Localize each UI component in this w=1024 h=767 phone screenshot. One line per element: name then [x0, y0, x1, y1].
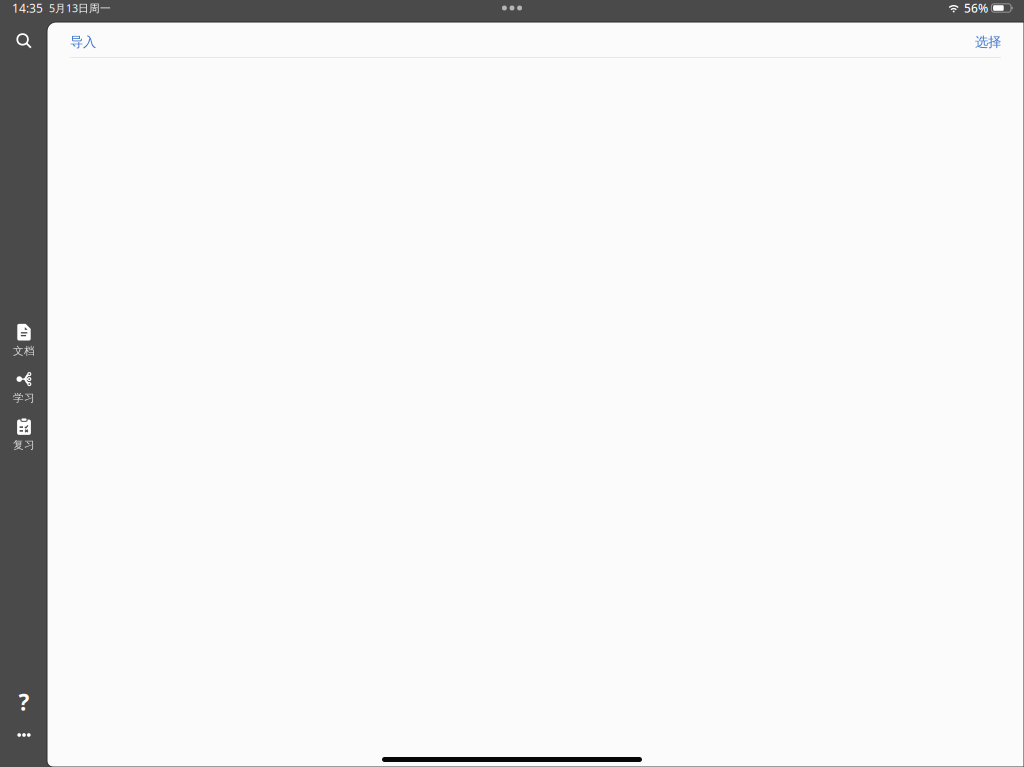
staticText: 文档 — [13, 344, 35, 357]
button[interactable]: Search — [0, 32, 48, 49]
button[interactable]: 选择 — [975, 22, 1001, 57]
staticText: 选择 — [975, 34, 1001, 50]
staticText: 14:35 — [12, 0, 43, 16]
staticText: ? — [18, 687, 29, 717]
button[interactable]: Help — [0, 692, 48, 712]
button[interactable]: 学习 — [0, 371, 48, 404]
button[interactable]: 导入 — [70, 22, 96, 57]
button[interactable]: 复习 — [0, 418, 48, 451]
staticText: 导入 — [70, 34, 96, 50]
staticText: 学习 — [13, 391, 35, 404]
button[interactable]: More — [0, 726, 48, 744]
button[interactable]: 文档 — [0, 324, 48, 357]
staticText: 复习 — [13, 438, 35, 451]
staticText: 56% — [964, 0, 988, 16]
staticText: 5月13日周一 — [49, 1, 111, 15]
